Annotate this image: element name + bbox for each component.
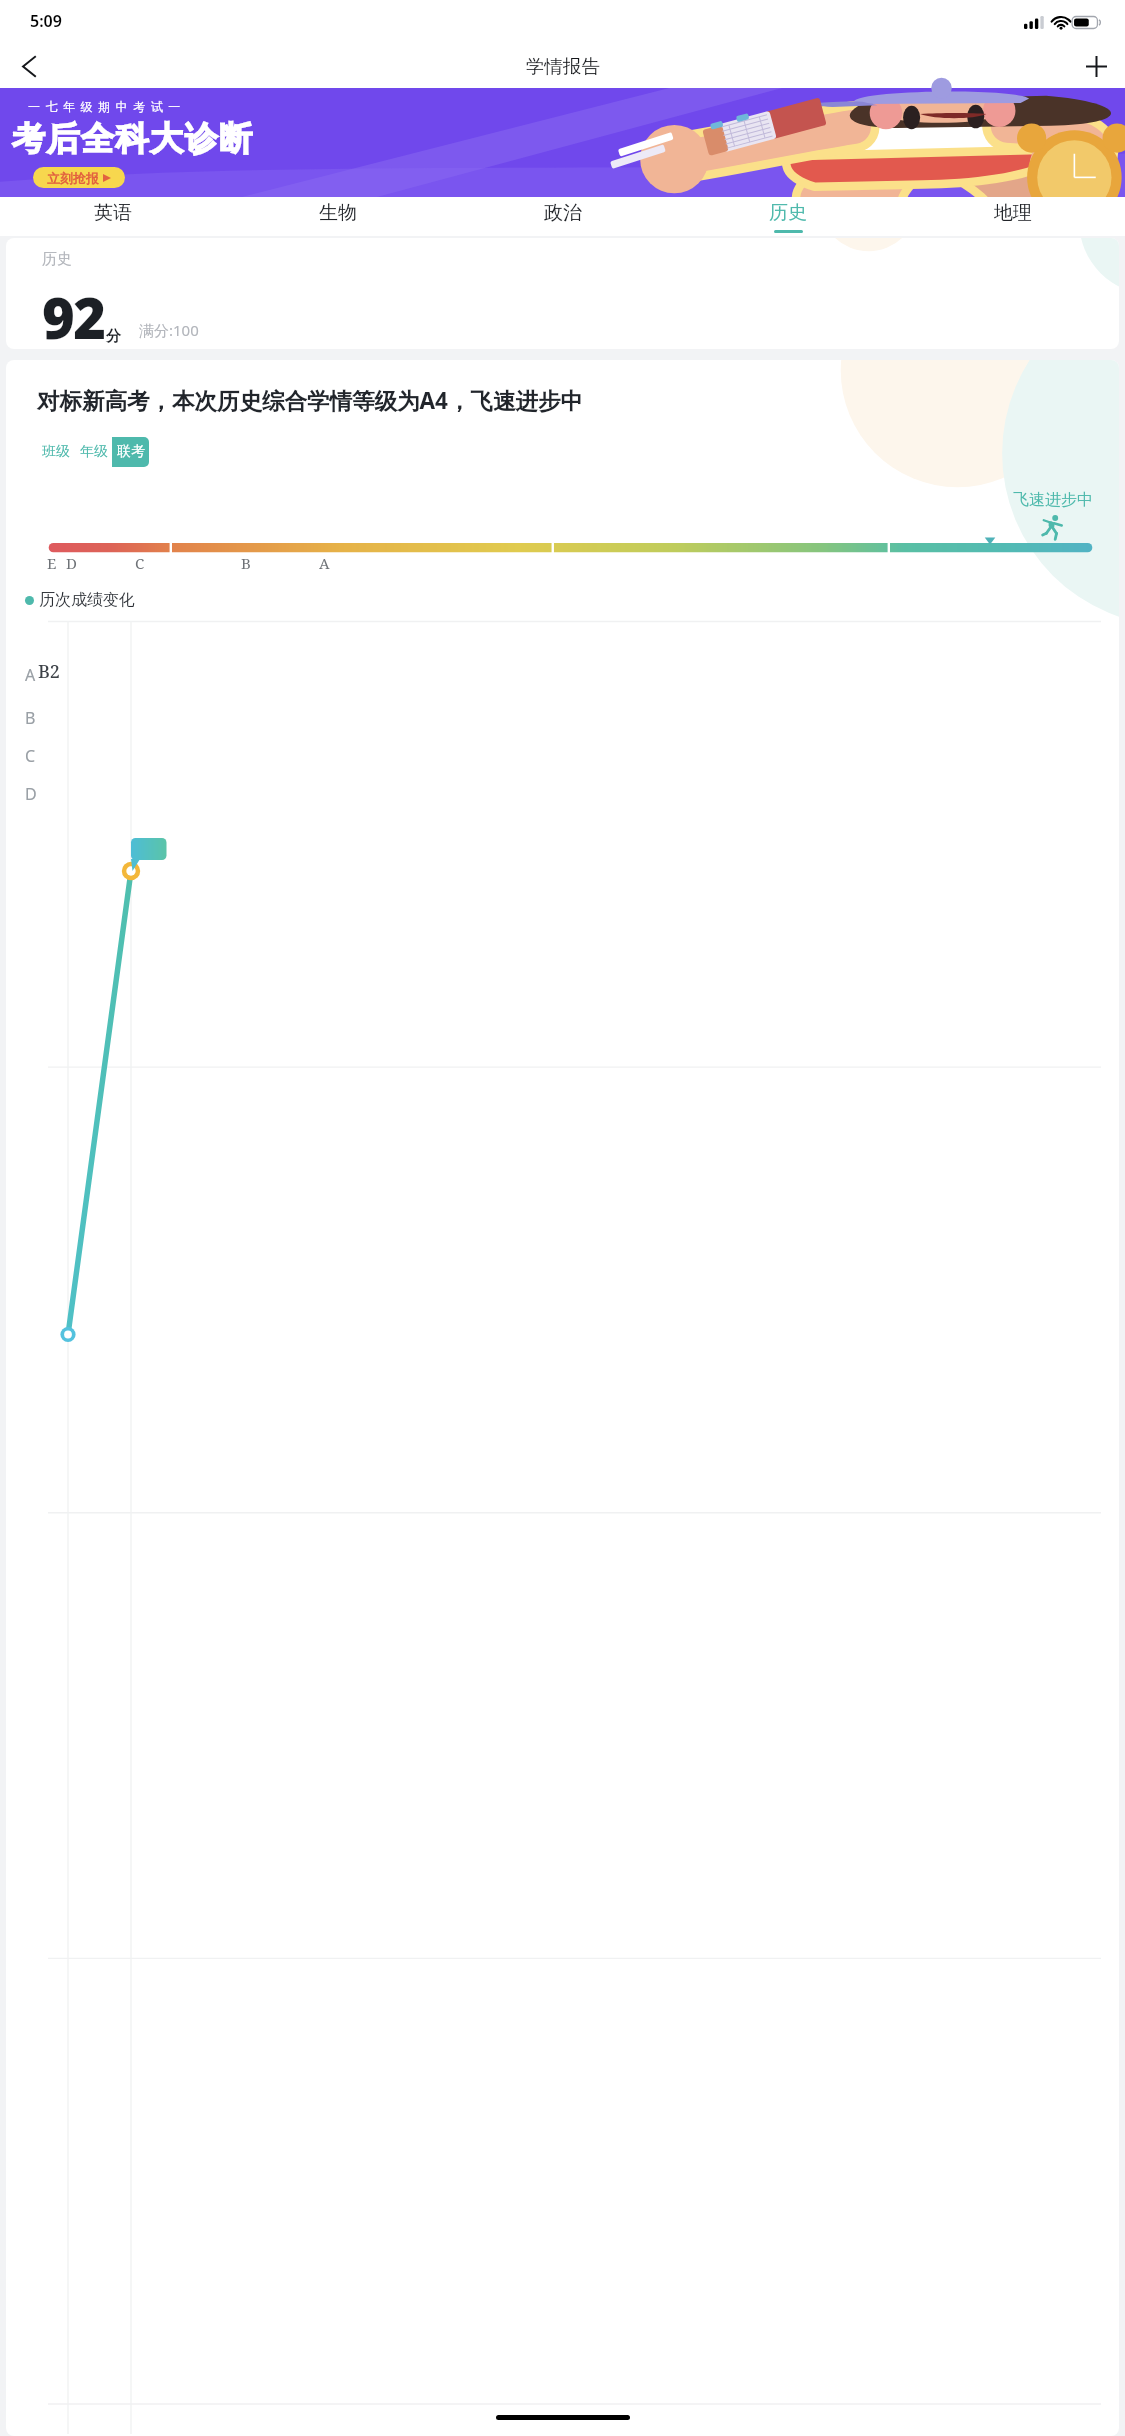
staticText: 班级 [42,443,70,461]
staticText: 历次成绩变化 [39,590,135,610]
staticText: 一 七 年 级 期 中 考 试 一 [28,98,182,114]
staticText: 政治 [544,201,582,225]
staticText: 年级 [80,443,108,461]
staticText: 地理 [994,201,1032,225]
button[interactable]: 立刻抢报 [33,167,125,188]
staticText: 历史 [42,250,72,269]
staticText: A [25,664,36,686]
staticText: 92 [42,279,105,349]
staticText: B [241,553,251,573]
staticText: B2 [38,659,60,684]
button[interactable]: 班级 [37,437,75,467]
staticText: 考后全科大诊断 [12,118,254,160]
staticText: 生物 [319,201,357,225]
staticText: 对标新高考，本次历史综合学情等级为A4，飞速进步中 [37,385,583,416]
staticText: 飞速进步中 [1013,490,1093,510]
button[interactable]: 地理 [900,197,1125,236]
staticText: 5:09 [30,10,62,32]
button[interactable]: 生物 [225,197,450,236]
button[interactable]: 历史 [675,197,900,236]
staticText: 立刻抢报 [47,170,99,186]
staticText: D [66,553,77,573]
button[interactable]: Add [1074,44,1118,88]
staticText: B [25,707,36,729]
button[interactable]: 政治 [450,197,675,236]
staticText: A [319,553,330,573]
button[interactable]: 联考 [112,437,149,467]
staticText: D [25,783,37,805]
staticText: C [135,553,145,573]
staticText: 满分:100 [139,320,199,340]
staticText: 历史 [769,201,807,225]
staticText: 学情报告 [526,55,600,78]
button[interactable]: 英语 [0,197,225,236]
button[interactable]: Back [7,44,51,88]
button[interactable]: 年级 [75,437,112,467]
button[interactable]: 历史 [6,238,1119,349]
staticText: 英语 [94,201,132,225]
staticText: E [47,553,57,573]
staticText: 联考 [117,443,145,461]
staticText: C [25,745,36,767]
button[interactable]: Exam promotion banner [0,88,1125,197]
staticText: 分 [106,327,121,346]
